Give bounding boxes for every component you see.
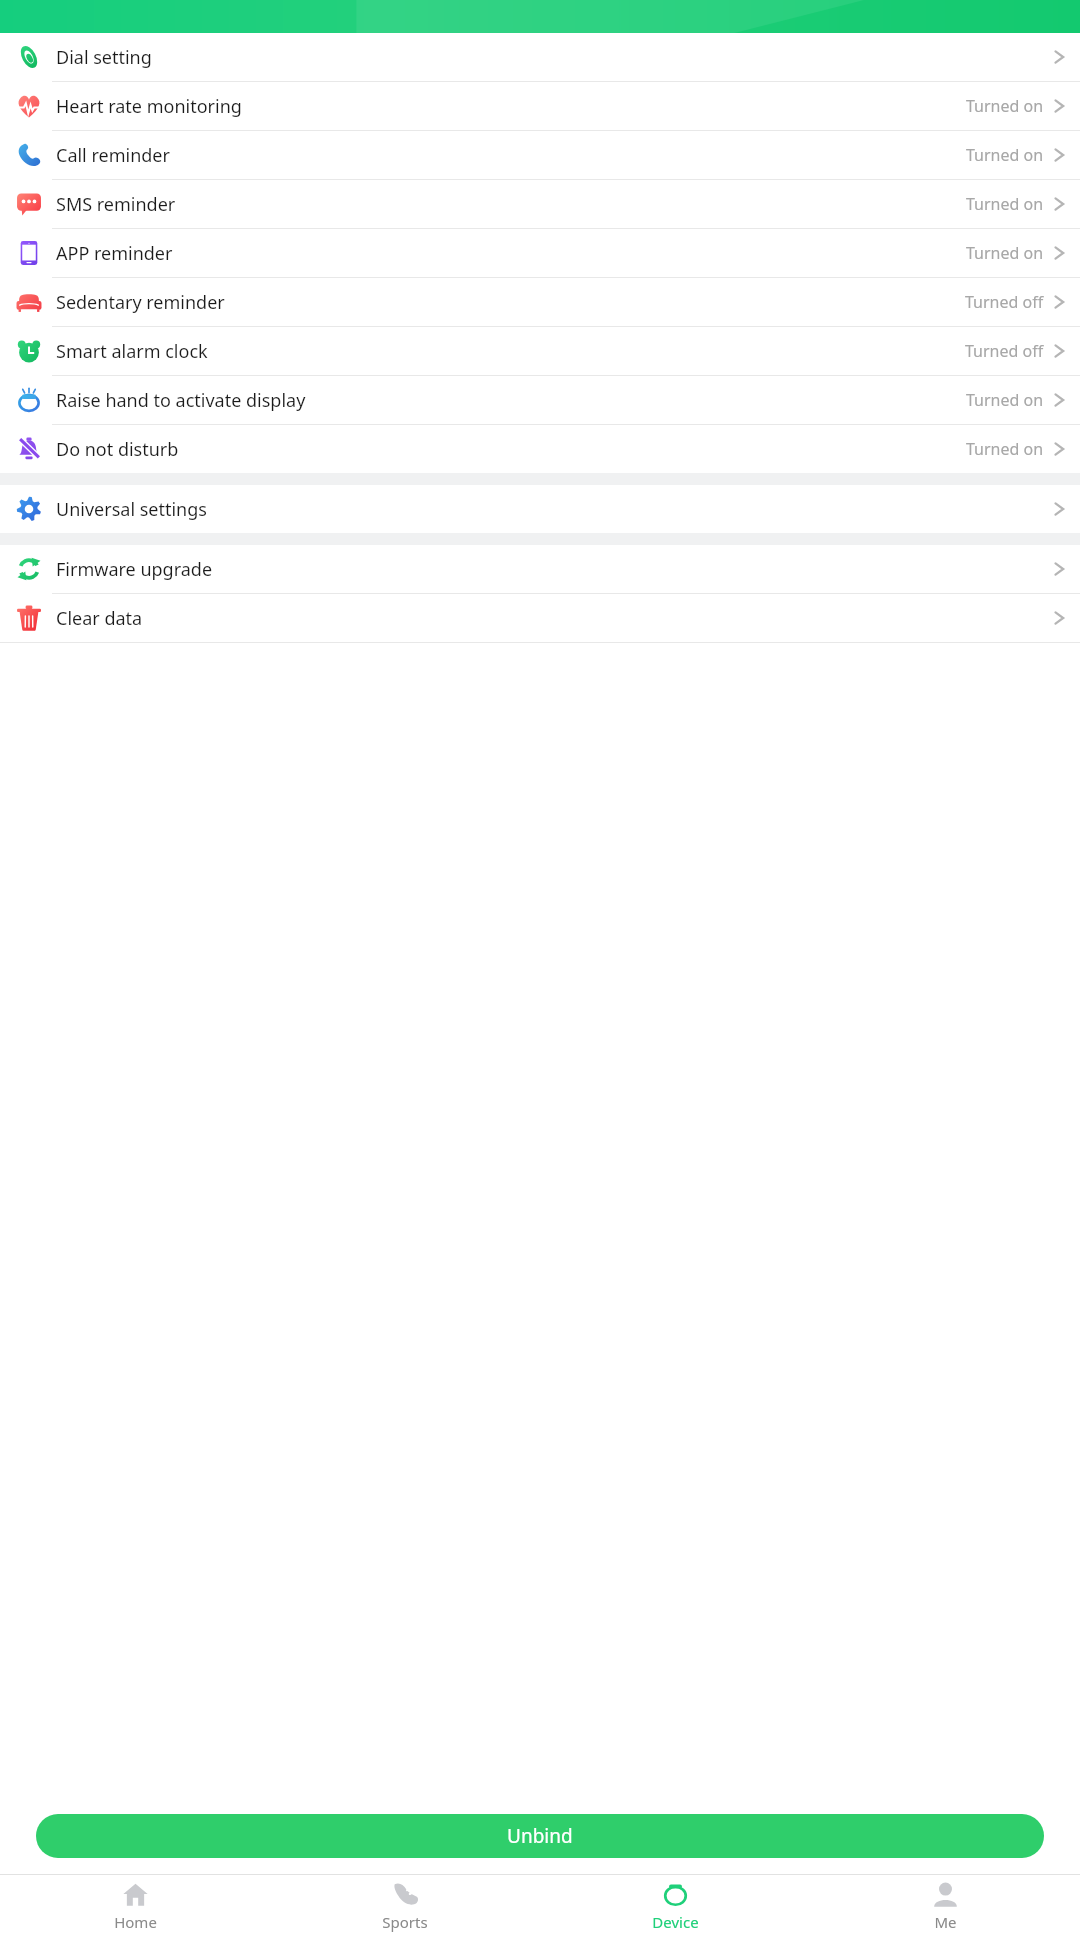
button[interactable]: Me [810, 1875, 1080, 1937]
staticText: Unbind [507, 1823, 573, 1849]
staticText: APP reminder [56, 241, 173, 266]
staticText: Sedentary reminder [56, 290, 225, 315]
staticText: Turned on [966, 95, 1044, 117]
staticText: Clear data [56, 606, 143, 631]
staticText: Sports [382, 1912, 428, 1932]
button[interactable]: Sports [270, 1875, 540, 1937]
staticText: Me [934, 1912, 957, 1932]
staticText: Turned on [966, 438, 1044, 460]
button[interactable]: Unbind [36, 1814, 1044, 1858]
button[interactable]: Firmware upgrade [0, 545, 1080, 593]
button[interactable]: Heart rate monitoring [0, 82, 1080, 130]
button[interactable]: Universal settings [0, 485, 1080, 533]
staticText: Do not disturb [56, 437, 179, 462]
staticText: Turned on [966, 144, 1044, 166]
staticText: Turned on [966, 242, 1044, 264]
button[interactable]: Do not disturb [0, 425, 1080, 473]
staticText: Heart rate monitoring [56, 94, 242, 119]
staticText: SMS reminder [56, 192, 176, 217]
staticText: Turned on [966, 389, 1044, 411]
staticText: Turned on [966, 193, 1044, 215]
staticText: Turned off [965, 340, 1044, 362]
button[interactable]: APP reminder [0, 229, 1080, 277]
staticText: Turned off [965, 291, 1044, 313]
staticText: Firmware upgrade [56, 557, 213, 582]
staticText: Universal settings [56, 497, 207, 522]
staticText: Smart alarm clock [56, 339, 208, 364]
staticText: Raise hand to activate display [56, 388, 306, 413]
staticText: Call reminder [56, 143, 170, 168]
button[interactable]: Home [0, 1875, 270, 1937]
button[interactable]: SMS reminder [0, 180, 1080, 228]
button[interactable]: Dial setting [0, 33, 1080, 81]
staticText: Dial setting [56, 45, 152, 70]
button[interactable]: Raise hand to activate display [0, 376, 1080, 424]
staticText: Home [114, 1912, 157, 1932]
button[interactable]: Call reminder [0, 131, 1080, 179]
button[interactable]: Smart alarm clock [0, 327, 1080, 375]
staticText: Device [652, 1912, 699, 1932]
button[interactable]: Device [540, 1875, 810, 1937]
button[interactable]: Sedentary reminder [0, 278, 1080, 326]
button[interactable]: Clear data [0, 594, 1080, 642]
